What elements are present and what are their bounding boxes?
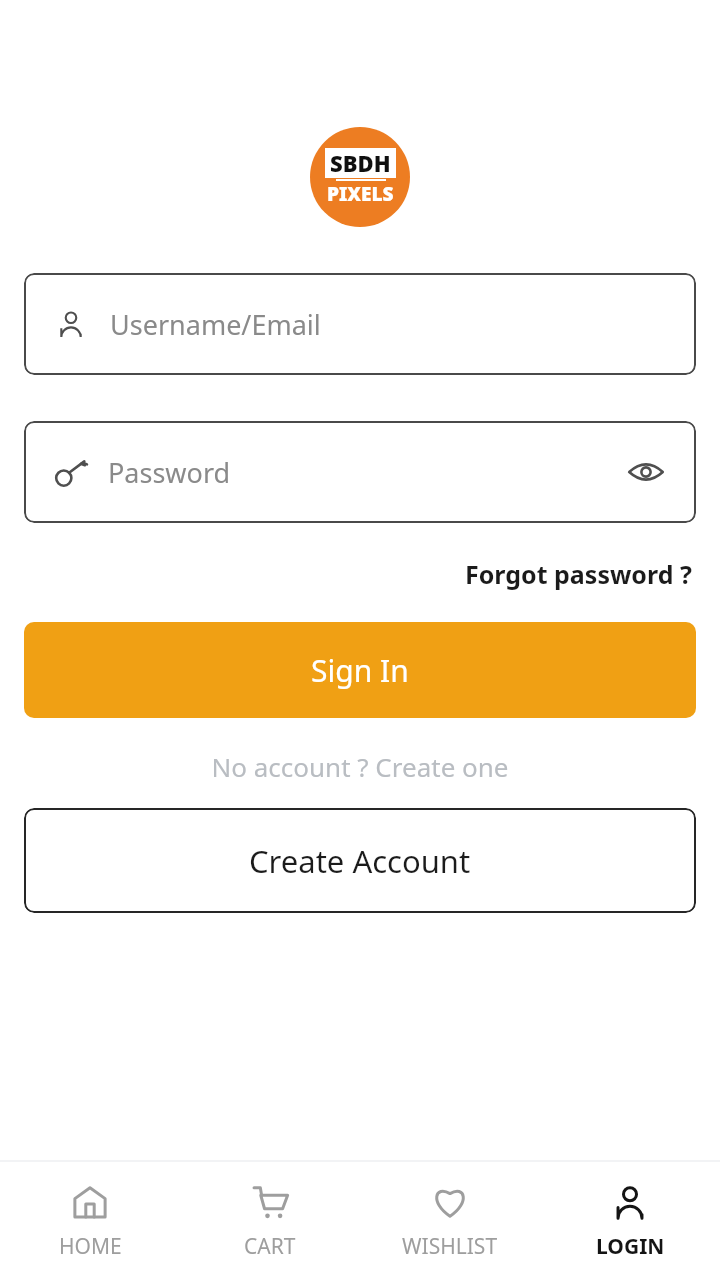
staticText: WISHLIST: [402, 1232, 498, 1261]
staticText: Password: [108, 454, 231, 491]
staticText: HOME: [59, 1232, 122, 1261]
staticText: PIXELS: [327, 181, 394, 207]
button[interactable]: Create Account: [24, 808, 696, 913]
button[interactable]: Sign In: [24, 622, 696, 718]
staticText: Create Account: [249, 840, 471, 882]
button[interactable]: CART: [180, 1162, 360, 1280]
staticText: Sign In: [311, 650, 409, 691]
staticText: Username/Email: [110, 306, 321, 343]
button[interactable]: HOME: [0, 1162, 180, 1280]
staticText: LOGIN: [596, 1232, 665, 1261]
button[interactable]: LOGIN: [540, 1162, 720, 1280]
button[interactable]: Username/Email: [24, 273, 696, 375]
staticText: CART: [244, 1232, 296, 1261]
staticText: SBDH: [330, 148, 391, 178]
staticText: Forgot password ?: [465, 557, 692, 591]
button[interactable]: Show password: [622, 448, 670, 496]
button[interactable]: Forgot password ?: [461, 553, 696, 595]
button[interactable]: Password: [24, 421, 696, 523]
staticText: No account ? Create one: [211, 749, 509, 784]
button[interactable]: WISHLIST: [360, 1162, 540, 1280]
